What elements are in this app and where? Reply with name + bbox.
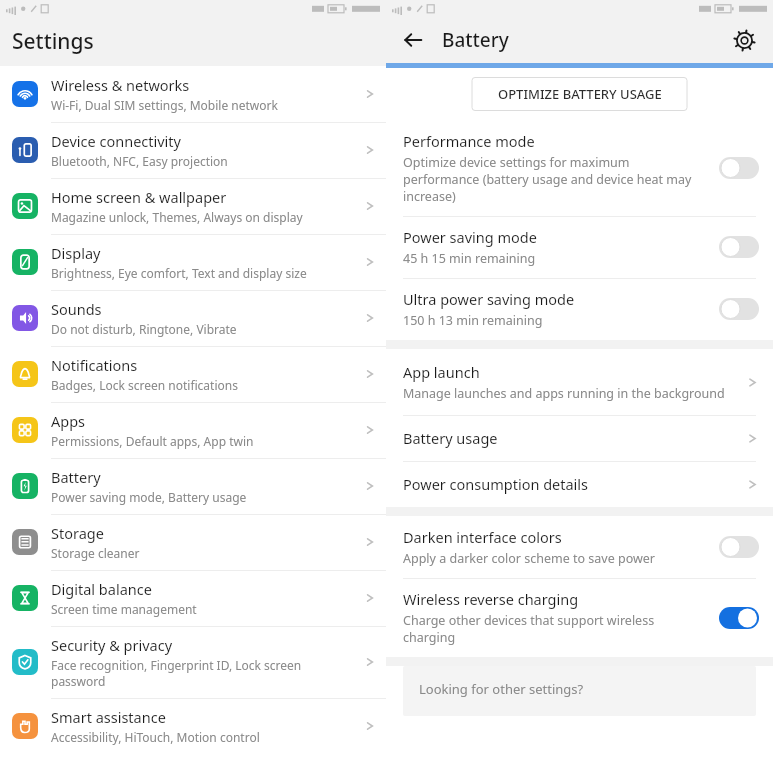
button[interactable]: Settings — [729, 25, 759, 55]
staticText: Apply a darker color scheme to save powe… — [403, 550, 656, 567]
button[interactable]: On — [719, 607, 759, 629]
button[interactable]: Wireless reverse charging — [386, 578, 773, 657]
staticText: Home screen & wallpaper — [51, 187, 227, 207]
staticText: Digital balance — [51, 579, 152, 599]
button[interactable]: Apps — [0, 402, 386, 458]
staticText: Storage cleaner — [51, 545, 140, 561]
staticText: Face recognition, Fingerprint ID, Lock s… — [51, 657, 358, 689]
button[interactable]: Wireless & networks — [0, 66, 386, 122]
staticText: Accessibility, HiTouch, Motion control — [51, 729, 260, 745]
button[interactable]: Ultra power saving mode — [386, 278, 773, 340]
staticText: App launch — [403, 362, 480, 382]
button[interactable]: Looking for other settings? — [403, 666, 756, 716]
button[interactable]: Battery usage — [386, 415, 773, 461]
staticText: Apps — [51, 411, 86, 431]
button[interactable]: Home screen & wallpaper — [0, 178, 386, 234]
staticText: Do not disturb, Ringtone, Vibrate — [51, 321, 237, 337]
staticText: Magazine unlock, Themes, Always on displ… — [51, 209, 303, 225]
staticText: Optimize device settings for maximum per… — [403, 154, 709, 205]
staticText: Power consumption details — [403, 474, 589, 494]
staticText: Wireless & networks — [51, 75, 190, 95]
button[interactable]: Power consumption details — [386, 461, 773, 507]
staticText: 150 h 13 min remaining — [403, 312, 543, 329]
button[interactable]: Darken interface colors — [386, 516, 773, 578]
staticText: Brightness, Eye comfort, Text and displa… — [51, 265, 307, 281]
staticText: Notifications — [51, 355, 138, 375]
staticText: Battery — [442, 27, 509, 53]
staticText: Power saving mode — [403, 227, 537, 247]
staticText: Power saving mode, Battery usage — [51, 489, 247, 505]
button[interactable]: Off — [719, 536, 759, 558]
button[interactable]: Back — [398, 25, 428, 55]
staticText: Settings — [12, 27, 94, 56]
staticText: Smart assistance — [51, 707, 166, 727]
staticText: Device connectivity — [51, 131, 181, 151]
staticText: Charge other devices that support wirele… — [403, 612, 709, 646]
staticText: Wi-Fi, Dual SIM settings, Mobile network — [51, 97, 278, 113]
staticText: Manage launches and apps running in the … — [403, 385, 725, 402]
button[interactable]: Off — [719, 236, 759, 258]
staticText: Wireless reverse charging — [403, 589, 579, 609]
button[interactable]: Performance mode — [386, 120, 773, 216]
button[interactable]: OPTIMIZE BATTERY USAGE — [482, 78, 678, 110]
staticText: Permissions, Default apps, App twin — [51, 433, 254, 449]
button[interactable]: Smart assistance — [0, 698, 386, 754]
staticText: Battery — [51, 467, 101, 487]
staticText: Ultra power saving mode — [403, 289, 575, 309]
button[interactable]: Battery — [0, 458, 386, 514]
staticText: Security & privacy — [51, 635, 173, 655]
button[interactable]: Off — [719, 157, 759, 179]
button[interactable]: Power saving mode — [386, 216, 773, 278]
button[interactable]: Storage — [0, 514, 386, 570]
button[interactable]: Sounds — [0, 290, 386, 346]
button[interactable]: Off — [719, 298, 759, 320]
staticText: Battery usage — [403, 428, 498, 448]
staticText: Display — [51, 243, 101, 263]
staticText: Darken interface colors — [403, 527, 562, 547]
button[interactable]: App launch — [386, 349, 773, 415]
staticText: Sounds — [51, 299, 102, 319]
staticText: Badges, Lock screen notifications — [51, 377, 238, 393]
staticText: Looking for other settings? — [419, 680, 584, 698]
button[interactable]: Device connectivity — [0, 122, 386, 178]
staticText: Screen time management — [51, 601, 197, 617]
button[interactable]: Digital balance — [0, 570, 386, 626]
staticText: Storage — [51, 523, 104, 543]
staticText: Bluetooth, NFC, Easy projection — [51, 153, 228, 169]
staticText: 45 h 15 min remaining — [403, 250, 536, 267]
button[interactable]: Security & privacy — [0, 626, 386, 698]
staticText: OPTIMIZE BATTERY USAGE — [498, 85, 662, 103]
button[interactable]: Notifications — [0, 346, 386, 402]
staticText: Performance mode — [403, 131, 535, 151]
button[interactable]: Display — [0, 234, 386, 290]
